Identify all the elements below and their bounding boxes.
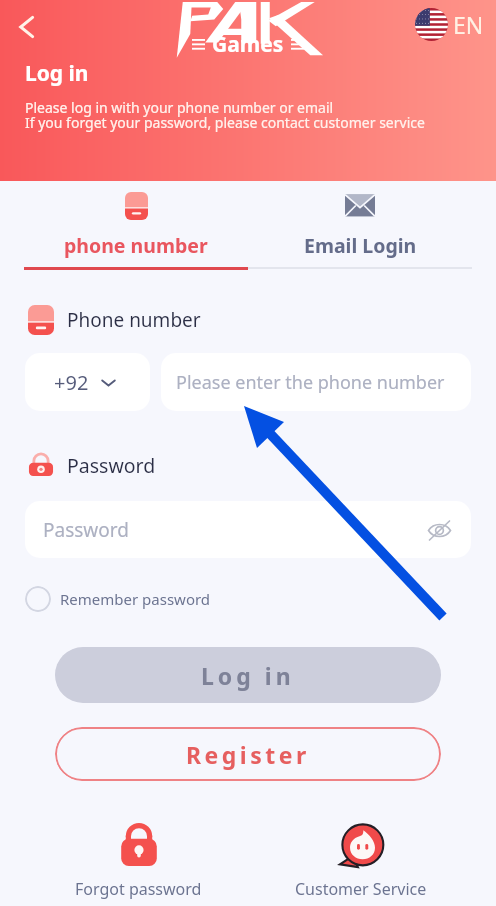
button[interactable]: Show password <box>423 514 455 546</box>
staticText: phone number <box>64 232 208 259</box>
staticText: Please log in with your phone number or … <box>25 98 425 132</box>
button[interactable]: Back <box>5 6 47 48</box>
button[interactable]: Email Login <box>248 191 472 269</box>
button[interactable]: Please enter the phone number <box>161 353 471 411</box>
button[interactable]: +92 <box>25 353 150 411</box>
staticText: Remember password <box>60 589 211 609</box>
staticText: Phone number <box>67 307 201 333</box>
staticText: Register <box>186 739 310 770</box>
staticText: Forgot password <box>75 878 202 900</box>
staticText: Password <box>43 517 129 543</box>
button[interactable]: phone number <box>24 191 248 270</box>
staticText: Log in <box>201 660 295 691</box>
staticText: Games <box>212 30 284 59</box>
button[interactable]: Remember password <box>25 586 211 612</box>
button[interactable]: Log in <box>55 647 441 703</box>
button[interactable]: EN <box>415 8 484 41</box>
staticText: Log in <box>25 59 89 88</box>
staticText: Password <box>67 452 156 479</box>
staticText: Email Login <box>304 232 417 259</box>
button[interactable]: Forgot password <box>75 823 202 900</box>
button[interactable]: Password <box>25 501 471 558</box>
staticText: Please enter the phone number <box>176 370 445 395</box>
button[interactable]: Register <box>55 727 441 781</box>
staticText: +92 <box>54 369 89 396</box>
staticText: EN <box>453 9 484 40</box>
button[interactable]: Customer Service <box>295 823 427 900</box>
staticText: Customer Service <box>295 878 427 900</box>
